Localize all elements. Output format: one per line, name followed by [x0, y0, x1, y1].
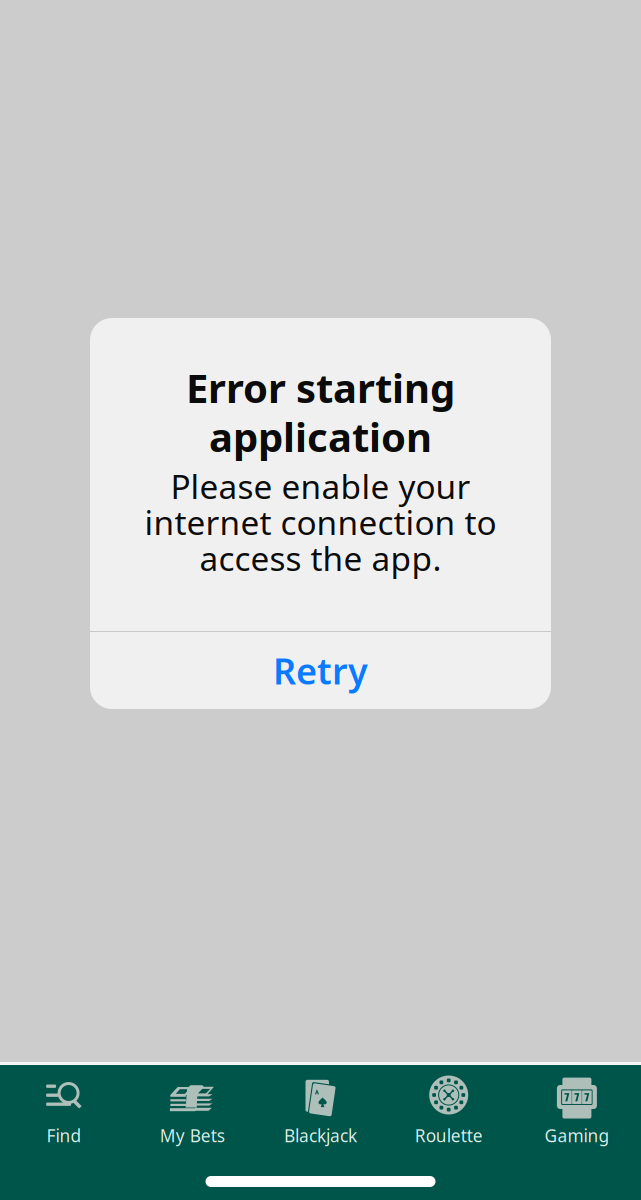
- staticText: internet connection to: [144, 500, 496, 544]
- staticText: Roulette: [415, 1124, 483, 1147]
- staticText: access the app.: [199, 536, 441, 580]
- staticText: Blackjack: [284, 1124, 357, 1147]
- staticText: application: [209, 410, 432, 463]
- staticText: Find: [47, 1124, 82, 1147]
- staticText: Please enable your: [170, 464, 470, 508]
- button[interactable]: Blackjack: [256, 1073, 385, 1145]
- button[interactable]: Gaming: [513, 1073, 641, 1145]
- button[interactable]: My Bets: [128, 1073, 256, 1145]
- button[interactable]: Roulette: [385, 1073, 513, 1145]
- staticText: Retry: [273, 647, 368, 694]
- staticText: My Bets: [160, 1124, 225, 1147]
- staticText: Error starting: [186, 361, 455, 414]
- button[interactable]: Retry: [90, 632, 551, 709]
- staticText: Gaming: [544, 1124, 609, 1147]
- button[interactable]: Find: [0, 1073, 128, 1145]
